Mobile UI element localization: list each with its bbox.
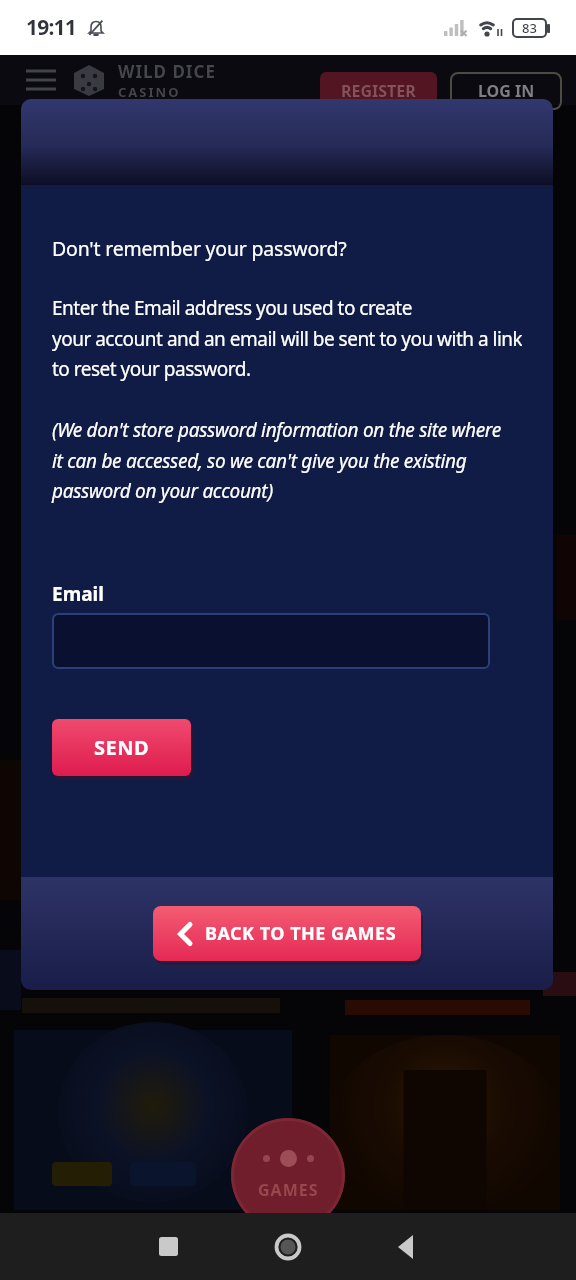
button[interactable] <box>396 1234 416 1260</box>
button[interactable]: REGISTER <box>320 72 437 110</box>
staticText: WILD DICE <box>118 60 216 83</box>
staticText: Email <box>52 581 104 607</box>
button[interactable] <box>159 1237 178 1256</box>
staticText: GAMES <box>258 1179 319 1201</box>
button[interactable] <box>52 613 490 669</box>
button[interactable] <box>274 1233 302 1261</box>
staticText: LOG IN <box>478 80 535 102</box>
button[interactable]: GAMES <box>231 1118 345 1232</box>
staticText: 83 <box>522 19 537 37</box>
staticText: BACK TO THE GAMES <box>205 921 397 946</box>
button[interactable]: BACK TO THE GAMES <box>153 906 421 961</box>
button[interactable]: SEND <box>52 719 191 776</box>
staticText: CASINO <box>118 83 181 101</box>
button[interactable] <box>26 68 56 92</box>
staticText: (We don't store password information on … <box>52 417 501 503</box>
staticText: Don't remember your password? <box>52 235 347 262</box>
staticText: 19:11 <box>26 13 76 42</box>
staticText: SEND <box>94 734 150 761</box>
staticText: Enter the Email address you used to crea… <box>52 295 522 381</box>
button[interactable]: LOG IN <box>450 72 562 110</box>
staticText: REGISTER <box>341 80 416 102</box>
